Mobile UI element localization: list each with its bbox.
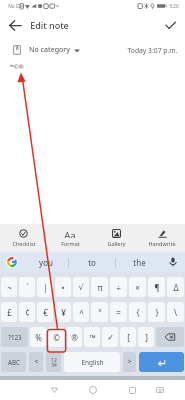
staticText: \ [174, 307, 177, 318]
staticText: to [88, 257, 96, 268]
staticText: ] [145, 332, 148, 343]
staticText: ` [26, 282, 29, 293]
button[interactable]: Voice input [163, 252, 183, 272]
staticText: ¶ [154, 282, 160, 293]
button[interactable]: = [110, 302, 127, 322]
staticText: = [116, 307, 121, 318]
button[interactable]: € [37, 302, 53, 322]
staticText: Handwrite [148, 240, 176, 247]
staticText: £ [7, 307, 12, 318]
button[interactable]: ~ [1, 277, 17, 297]
button[interactable]: the [116, 252, 162, 272]
staticText: | [43, 282, 48, 293]
staticText: > [127, 357, 132, 367]
button[interactable]: % [30, 327, 46, 347]
staticText: • [61, 282, 65, 293]
staticText: ÷ [116, 282, 121, 293]
staticText: Gallery [107, 240, 126, 247]
staticText: ?123 [8, 333, 22, 341]
button[interactable]: Gallery [93, 224, 139, 252]
button[interactable]: £ [1, 302, 17, 322]
button[interactable]: ™ [84, 327, 100, 347]
staticText: 5:20 [169, 3, 179, 9]
button[interactable]: Save note [158, 13, 183, 38]
staticText: ^ [79, 307, 84, 318]
button[interactable]: English [64, 352, 120, 372]
button[interactable]: Google [1, 252, 23, 272]
staticText: Today 3:07 p.m. [127, 46, 178, 55]
button[interactable]: Aa [47, 224, 93, 252]
button[interactable]: ^ [73, 302, 89, 322]
button[interactable]: Checklist [0, 224, 47, 252]
button[interactable]: to [69, 252, 115, 272]
button[interactable]: ` [19, 277, 35, 297]
button[interactable]: \ [167, 302, 184, 322]
staticText: ™©® [9, 63, 24, 71]
staticText: ™ [89, 332, 96, 343]
button[interactable]: you [23, 252, 68, 272]
staticText: No SIM [8, 3, 24, 9]
staticText: Aa [64, 229, 76, 238]
staticText: Δ [173, 282, 179, 293]
staticText: % [35, 332, 42, 343]
button[interactable]: { [129, 302, 146, 322]
staticText: < [34, 357, 39, 367]
button[interactable]: ¶ [148, 277, 165, 297]
button[interactable]: ® [66, 327, 82, 347]
staticText: Format [61, 240, 80, 247]
button[interactable]: © [48, 327, 64, 347]
button[interactable]: Δ [167, 277, 184, 297]
button[interactable]: ÷ [110, 277, 127, 297]
staticText: you [39, 257, 53, 268]
staticText: Edit note [30, 19, 69, 31]
staticText: } [155, 307, 159, 318]
button[interactable]: Enter [139, 352, 184, 372]
button[interactable]: Navigate up [3, 13, 28, 38]
staticText: ABC [8, 358, 20, 366]
staticText: the [133, 257, 146, 268]
button[interactable]: × [129, 277, 146, 297]
staticText: { [136, 307, 140, 318]
button[interactable]: > [123, 352, 136, 372]
button[interactable]: ¢ [19, 302, 35, 322]
button[interactable]: Hide keyboard [151, 380, 169, 400]
staticText: ~ [7, 282, 12, 293]
button[interactable]: Home [84, 380, 102, 400]
button[interactable]: ° [91, 302, 108, 322]
staticText: Checklist [12, 240, 36, 247]
button[interactable]: Delete [156, 327, 184, 347]
button[interactable]: Back [45, 380, 63, 400]
staticText: √ [78, 283, 84, 292]
button[interactable]: ✓ [102, 327, 118, 347]
staticText: π [97, 282, 103, 293]
button[interactable]: ?123 [1, 327, 28, 347]
staticText: ¥ [61, 307, 66, 318]
button[interactable]: • [55, 277, 71, 297]
button[interactable]: √ [73, 277, 89, 297]
staticText: English [81, 358, 104, 367]
staticText: ® [71, 332, 78, 343]
button[interactable]: No category [13, 40, 80, 60]
button[interactable]: π [91, 277, 108, 297]
button[interactable]: ] [138, 327, 154, 347]
staticText: [ [127, 332, 130, 343]
staticText: ¢ [25, 307, 30, 318]
button[interactable]: } [148, 302, 165, 322]
button[interactable]: Handwrite [139, 224, 185, 252]
button[interactable]: ABC [1, 352, 26, 372]
staticText: © [53, 332, 60, 343]
button[interactable]: [ [120, 327, 136, 347]
staticText: ✓ [107, 333, 114, 342]
staticText: 12 34 [51, 357, 57, 368]
button[interactable]: Recent apps [123, 380, 141, 400]
button[interactable]: | [37, 277, 53, 297]
staticText: € [43, 307, 48, 318]
staticText: × [135, 282, 140, 293]
staticText: No category [29, 45, 70, 55]
button[interactable]: 12 34 [46, 352, 61, 372]
button[interactable]: ¥ [55, 302, 71, 322]
staticText: ° [98, 307, 102, 318]
button[interactable]: < [29, 352, 43, 372]
